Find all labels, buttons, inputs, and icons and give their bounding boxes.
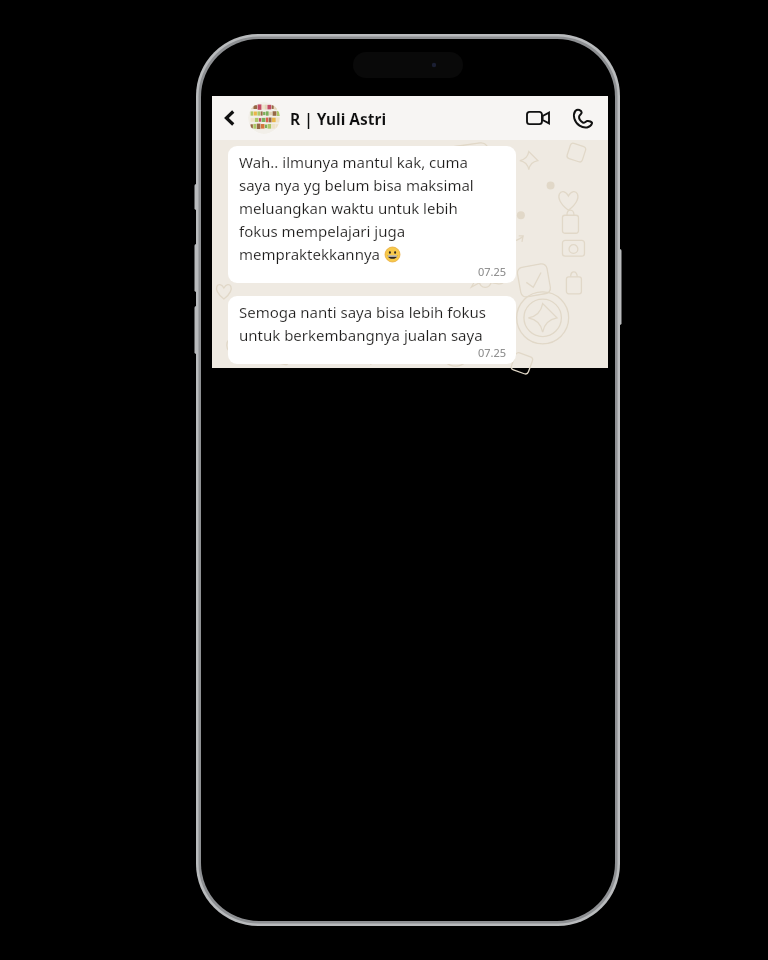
staticText: saya nya yg belum bisa maksimal	[239, 175, 474, 195]
button[interactable]: Back	[212, 96, 248, 140]
staticText: Wah.. ilmunya mantul kak, cuma	[239, 152, 468, 172]
button[interactable]: Wah.. ilmunya mantul kak, cuma	[228, 146, 516, 283]
staticText: 07.25	[478, 345, 507, 360]
button[interactable]: Video call	[516, 96, 560, 140]
staticText: fokus mempelajari juga	[239, 221, 406, 241]
button[interactable]: Semoga nanti saya bisa lebih fokus	[228, 296, 516, 364]
staticText: meluangkan waktu untuk lebih	[239, 198, 458, 218]
staticText: 07.25	[478, 264, 507, 279]
staticText: Semoga nanti saya bisa lebih fokus	[239, 302, 486, 322]
staticText: mempraktekkannya	[239, 244, 380, 264]
staticText: R | Yuli Astri	[290, 108, 387, 129]
button[interactable]	[248, 102, 280, 134]
staticText: untuk berkembangnya jualan saya	[239, 325, 483, 345]
button[interactable]: Voice call	[560, 96, 604, 140]
button[interactable]: R | Yuli Astri	[290, 96, 516, 140]
